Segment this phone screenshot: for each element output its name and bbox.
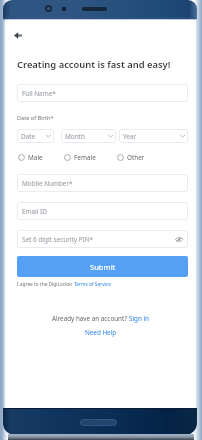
staticText: Female xyxy=(74,153,96,162)
staticText: Set 6 digit security PIN* xyxy=(22,235,94,244)
button[interactable]: Female xyxy=(64,153,96,162)
button[interactable]: Date xyxy=(17,129,54,143)
button[interactable]: Terms of Service xyxy=(74,281,111,288)
button[interactable]: Male xyxy=(18,153,43,162)
staticText: Other xyxy=(127,153,145,162)
button[interactable]: Mobile Number* xyxy=(17,174,188,192)
button[interactable]: Submit xyxy=(17,256,188,277)
button[interactable]: Set 6 digit security PIN* xyxy=(17,230,188,248)
staticText: Male xyxy=(28,153,43,162)
staticText: Date of Birth* xyxy=(17,114,54,122)
staticText: Submit xyxy=(90,262,116,272)
button[interactable]: Full Name* xyxy=(17,84,188,102)
staticText: I agree to the DigiLocker xyxy=(17,281,74,288)
other: Show PIN xyxy=(175,237,183,242)
button[interactable]: Need Help xyxy=(85,328,117,337)
button[interactable]: Month xyxy=(61,129,116,143)
staticText: Date xyxy=(21,132,36,141)
button[interactable]: Year xyxy=(119,129,188,143)
staticText: Mobile Number* xyxy=(22,179,73,188)
staticText: Year xyxy=(123,132,137,141)
staticText: Month xyxy=(65,132,85,141)
staticText: Creating account is fast and easy! xyxy=(17,58,171,71)
staticText: Email ID xyxy=(22,207,47,216)
button[interactable]: Other xyxy=(117,153,145,162)
staticText: Full Name* xyxy=(22,89,56,98)
staticText: Already have an account? xyxy=(52,314,129,323)
button[interactable]: Email ID xyxy=(17,202,188,220)
button[interactable]: Back xyxy=(11,28,25,42)
button[interactable]: Sign in xyxy=(129,314,149,323)
